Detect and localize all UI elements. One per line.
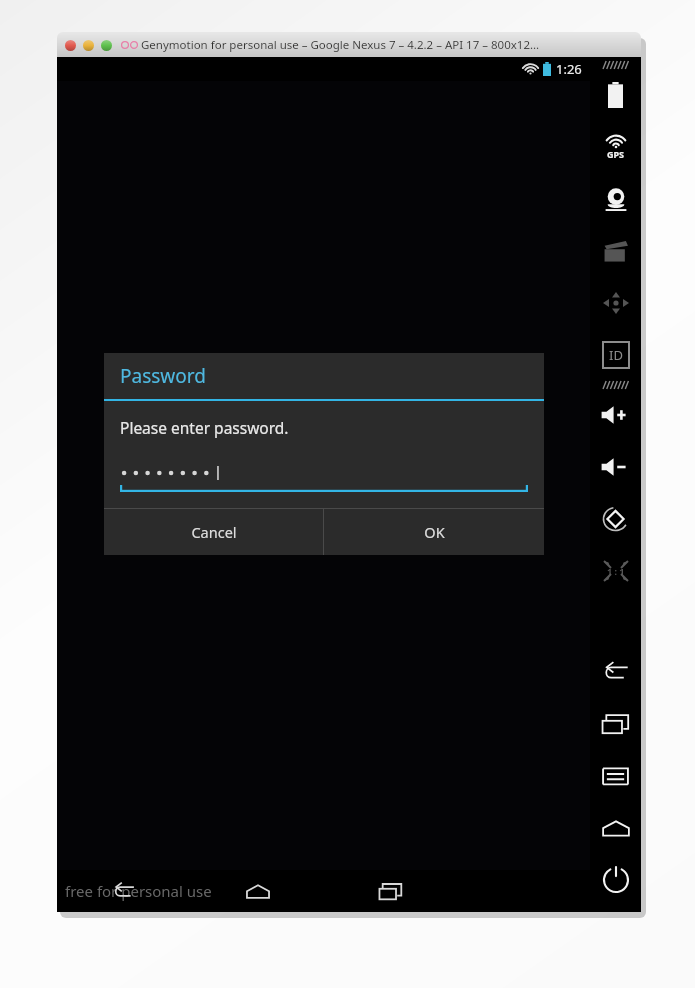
button[interactable]: Volume up: [590, 389, 641, 441]
staticText: OK: [424, 522, 445, 542]
button[interactable]: Identifiers: [590, 329, 641, 381]
button[interactable]: One to one: [590, 545, 641, 597]
staticText: GPS: [607, 148, 625, 160]
button[interactable]: Home: [191, 870, 324, 912]
button[interactable]: Camera: [590, 173, 641, 225]
staticText: free for personal use: [65, 881, 212, 901]
button[interactable]: Battery: [590, 69, 641, 121]
staticText: Cancel: [191, 522, 237, 542]
button[interactable]: Recent apps: [324, 870, 457, 912]
staticText: Please enter password.: [120, 417, 289, 438]
button[interactable]: [120, 462, 528, 492]
button[interactable]: Recent apps: [590, 698, 641, 750]
button[interactable]: Menu: [590, 750, 641, 802]
button[interactable]: Rotate: [590, 493, 641, 545]
button[interactable]: Home: [590, 802, 641, 854]
staticText: 1 : 1: [607, 565, 625, 577]
staticText: ID: [609, 346, 623, 364]
button[interactable]: Back: [57, 870, 191, 912]
button[interactable]: OK: [324, 509, 544, 555]
button[interactable]: Volume down: [590, 441, 641, 493]
staticText: Genymotion for personal use – Google Nex…: [141, 37, 540, 53]
button[interactable]: GPS: [590, 121, 641, 173]
staticText: Password: [120, 363, 206, 389]
button[interactable]: D-pad: [590, 277, 641, 329]
button[interactable]: Power: [590, 854, 641, 906]
button[interactable]: Video: [590, 225, 641, 277]
button[interactable]: Cancel: [104, 509, 323, 555]
staticText: 1:26: [556, 60, 582, 78]
button[interactable]: Back: [590, 646, 641, 698]
